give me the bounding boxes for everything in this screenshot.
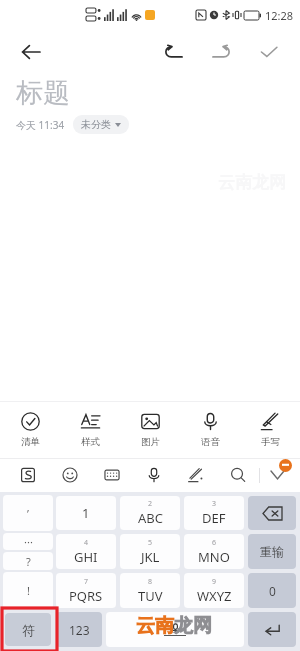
staticText: 2 (148, 499, 153, 509)
staticText: 123 (69, 622, 90, 638)
staticText: ’ (27, 506, 29, 521)
button[interactable]: 1 (56, 496, 116, 530)
staticText: ··· (24, 534, 33, 549)
button[interactable]: Redo (204, 35, 238, 69)
staticText: 龙网 (174, 614, 212, 638)
staticText: 9 (212, 577, 217, 587)
button[interactable]: Search (217, 458, 259, 492)
button[interactable]: Sogou input (6, 458, 49, 492)
button[interactable]: 语音 (180, 402, 240, 458)
button[interactable]: 清单 (0, 402, 60, 458)
staticText: 云南龙网 (218, 172, 286, 193)
staticText: 图片 (141, 436, 160, 448)
button[interactable]: 图片 (120, 402, 180, 458)
button[interactable]: Handwriting (175, 458, 217, 492)
button[interactable]: Save (252, 35, 286, 69)
staticText: 今天 11:34 (16, 118, 65, 132)
button[interactable]: 8 (120, 573, 180, 608)
button[interactable]: 重输 (248, 534, 296, 569)
button[interactable]: Voice input (133, 458, 175, 492)
button[interactable]: 2 (120, 496, 180, 530)
staticText: 手写 (261, 436, 280, 448)
button[interactable]: Back (14, 35, 48, 69)
staticText: 5 (148, 538, 153, 548)
button[interactable]: ··· (3, 533, 53, 550)
staticText: 语音 (201, 436, 220, 448)
button[interactable]: 样式 (60, 402, 120, 458)
button[interactable]: ? (3, 552, 53, 570)
button[interactable]: 4 (56, 534, 116, 569)
staticText: 12:28 (265, 8, 294, 23)
button[interactable]: 6 (184, 534, 244, 569)
staticText: 样式 (81, 436, 100, 448)
button[interactable]: Keyboard layout (91, 458, 133, 492)
staticText: 重输 (260, 544, 284, 559)
staticText: DEF (202, 509, 226, 527)
staticText: 6 (212, 538, 217, 548)
staticText: ! (27, 583, 30, 598)
staticText: TUV (138, 587, 163, 605)
staticText: 标题 (16, 76, 70, 110)
staticText: 7 (84, 577, 89, 587)
button[interactable]: 5 (120, 534, 180, 569)
button[interactable]: ! (3, 572, 53, 609)
button[interactable]: 3 (184, 496, 244, 530)
staticText: 8 (148, 577, 153, 587)
button[interactable]: Undo (156, 35, 190, 69)
button[interactable]: ’ (3, 495, 53, 531)
staticText: 4 (84, 538, 89, 548)
staticText: JKL (141, 548, 160, 566)
staticText: 云南 (136, 614, 174, 638)
staticText: 清单 (21, 436, 40, 448)
button[interactable]: Backspace (248, 496, 296, 530)
staticText: ? (26, 554, 31, 569)
staticText: 未分类 (81, 118, 111, 131)
button[interactable]: 手写 (240, 402, 300, 458)
button[interactable]: 9 (184, 573, 244, 608)
button[interactable]: Emoji (49, 458, 91, 492)
button[interactable]: Enter (248, 612, 296, 647)
button[interactable]: 0 (248, 573, 296, 608)
button[interactable]: 未分类 (73, 115, 129, 134)
staticText: WXYZ (197, 587, 232, 605)
button[interactable]: 7 (56, 573, 116, 608)
button[interactable]: Hide keyboard (260, 458, 294, 492)
button[interactable]: Space (106, 612, 244, 647)
staticText: 符 (22, 622, 35, 638)
button[interactable]: 符 (5, 613, 51, 646)
staticText: 0 (269, 583, 276, 599)
staticText: 3 (212, 499, 217, 509)
staticText: ABC (138, 509, 163, 527)
staticText: PQRS (69, 587, 103, 605)
staticText: MNO (198, 548, 230, 566)
button[interactable]: 123 (56, 612, 102, 647)
staticText: 1 (82, 504, 90, 522)
staticText: GHI (74, 548, 98, 566)
